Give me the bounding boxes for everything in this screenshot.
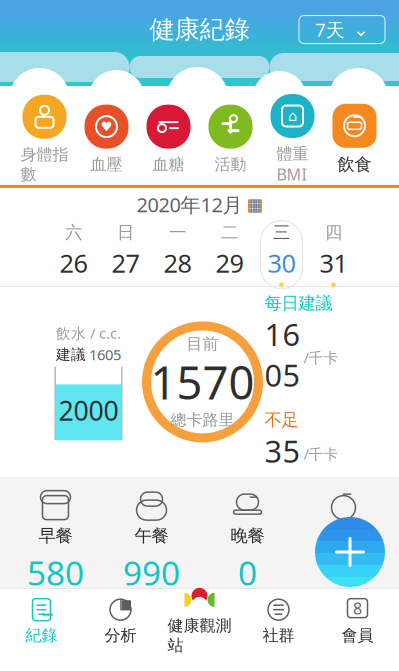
staticText: 血糖 — [152, 155, 184, 174]
staticText: 血壓 — [90, 155, 122, 174]
staticText: 0 — [238, 550, 257, 595]
button[interactable]: 三 — [258, 220, 304, 290]
staticText: 27 — [111, 246, 139, 280]
staticText: 8 — [353, 597, 362, 619]
staticText: ▦ — [246, 195, 262, 214]
staticText: 社群 — [262, 626, 294, 645]
staticText: 目前 — [186, 334, 218, 354]
staticText: 建議 — [56, 346, 86, 364]
staticText: 每日建議 — [264, 292, 332, 314]
staticText: 不足 — [264, 409, 298, 431]
staticText: ⌂ — [288, 108, 297, 124]
button[interactable]: 身體指數 — [13, 95, 75, 184]
staticText: 分析 — [104, 626, 136, 645]
button[interactable]: 7天 — [299, 16, 385, 44]
staticText: 晚餐 — [230, 525, 264, 546]
staticText: 身體指數 — [20, 145, 68, 184]
staticText: 26 — [59, 246, 87, 280]
staticText: 點心 — [326, 525, 360, 546]
button[interactable]: 血糖 — [137, 105, 199, 174]
staticText: 飲食 — [337, 154, 371, 175]
staticText: 29 — [215, 246, 243, 280]
staticText: 二 — [221, 222, 238, 243]
staticText: 健康紀錄 — [149, 14, 249, 45]
button[interactable]: 午餐 — [103, 489, 199, 595]
staticText: 紀錄 — [25, 626, 57, 645]
staticText: 0 — [334, 550, 353, 595]
staticText: 六 — [65, 222, 82, 243]
staticText: 28 — [163, 246, 191, 280]
button[interactable]: 選擇日期 — [246, 195, 262, 214]
staticText: /千卡 — [303, 444, 338, 464]
button[interactable]: 健康觀測站 — [160, 594, 239, 648]
staticText: 飲水 / c.c. — [56, 323, 121, 343]
staticText: ⌄ — [353, 19, 369, 40]
staticText: 總卡路里 — [170, 410, 234, 430]
staticText: 活動 — [214, 155, 246, 174]
button[interactable]: ♥ — [75, 105, 137, 174]
button[interactable]: 一 — [154, 220, 200, 290]
button[interactable]: 社群 — [239, 594, 318, 648]
staticText: 三 — [273, 222, 290, 243]
staticText: 35 — [264, 431, 300, 471]
button[interactable]: 分析 — [81, 594, 160, 648]
staticText: ♥ — [100, 119, 112, 134]
staticText: 2020年12月 — [136, 191, 242, 218]
staticText: 午餐 — [134, 525, 168, 546]
button[interactable]: 日 — [102, 220, 148, 290]
staticText: 早餐 — [38, 525, 72, 546]
staticText: 31 — [319, 246, 347, 280]
staticText: 四 — [325, 222, 342, 243]
button[interactable]: ⌂ — [261, 94, 323, 185]
button[interactable]: 飲食 — [323, 104, 385, 175]
button[interactable]: 四 — [310, 220, 356, 290]
staticText: 一 — [169, 222, 186, 243]
button[interactable]: 8 — [318, 594, 397, 648]
staticText: 1570 — [150, 352, 254, 412]
button[interactable]: 二 — [206, 220, 252, 290]
button[interactable]: 晚餐 — [199, 489, 295, 595]
button[interactable]: 新增紀錄 — [315, 517, 385, 587]
staticText: 日 — [117, 222, 134, 243]
staticText: 2000 — [58, 393, 118, 428]
staticText: 990 — [123, 550, 180, 595]
button[interactable]: 紀錄 — [2, 594, 81, 648]
staticText: 健康觀測站 — [167, 616, 231, 655]
button[interactable]: 早餐 — [7, 489, 103, 595]
button[interactable]: 點心 — [295, 489, 391, 595]
staticText: 體重 BMI — [276, 144, 308, 185]
staticText: 7天 — [315, 17, 345, 42]
staticText: /千卡 — [303, 348, 338, 367]
staticText: 1605 — [264, 314, 300, 395]
staticText: 會員 — [341, 626, 373, 645]
staticText: 1605 — [89, 345, 121, 364]
staticText: 580 — [27, 550, 84, 595]
button[interactable]: 六 — [50, 220, 96, 290]
button[interactable]: 活動 — [199, 105, 261, 174]
staticText: 30 — [267, 246, 295, 280]
